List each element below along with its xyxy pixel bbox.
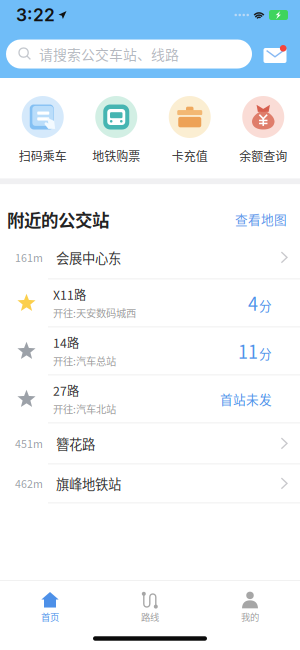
staticText: 查看地图: [235, 210, 287, 228]
staticText: 分: [259, 296, 272, 314]
staticText: 4: [248, 290, 258, 316]
staticText: 11: [238, 338, 258, 364]
button[interactable]: 地铁购票: [79, 96, 153, 164]
button[interactable]: 首页: [0, 581, 100, 627]
staticText: 3:22: [16, 4, 55, 25]
staticText: 余额查询: [239, 147, 287, 164]
button[interactable]: 消息: [258, 39, 292, 68]
button[interactable]: 27路: [0, 375, 300, 422]
staticText: 路线: [141, 610, 159, 623]
staticText: 卡充值: [172, 147, 208, 164]
button[interactable]: 卡充值: [153, 96, 226, 164]
staticText: 分: [259, 344, 272, 362]
staticText: 14路: [53, 334, 79, 351]
staticText: 簪花路: [56, 434, 95, 453]
button[interactable]: 扫码乘车: [6, 96, 79, 164]
staticText: 地铁购票: [92, 147, 140, 164]
staticText: 27路: [53, 382, 79, 399]
staticText: 首页: [41, 610, 59, 623]
staticText: 附近的公交站: [7, 206, 109, 232]
button[interactable]: 451m: [0, 423, 300, 463]
staticText: X11路: [53, 286, 86, 303]
staticText: 开往:汽车总站: [53, 353, 116, 368]
button[interactable]: 请搜索公交车站、线路: [6, 39, 252, 68]
staticText: 扫码乘车: [19, 147, 67, 164]
button[interactable]: 462m: [0, 464, 300, 502]
button[interactable]: 查看地图: [235, 210, 287, 228]
staticText: 首站未发: [220, 390, 272, 408]
button[interactable]: X11路: [0, 279, 300, 326]
button[interactable]: 161m: [0, 236, 300, 278]
staticText: 我的: [241, 610, 259, 623]
staticText: 旗峰地铁站: [56, 474, 121, 493]
button[interactable]: 余额查询: [226, 96, 300, 164]
staticText: 请搜索公交车站、线路: [39, 44, 179, 64]
staticText: 161m: [15, 250, 43, 265]
staticText: 451m: [15, 436, 43, 451]
button[interactable]: 我的: [200, 581, 300, 627]
staticText: 会展中心东: [56, 248, 121, 267]
staticText: 开往:汽车北站: [53, 401, 116, 416]
button[interactable]: 路线: [100, 581, 200, 627]
button[interactable]: 14路: [0, 327, 300, 374]
staticText: 462m: [15, 476, 43, 491]
staticText: 开往:天安数码城西: [53, 305, 136, 320]
